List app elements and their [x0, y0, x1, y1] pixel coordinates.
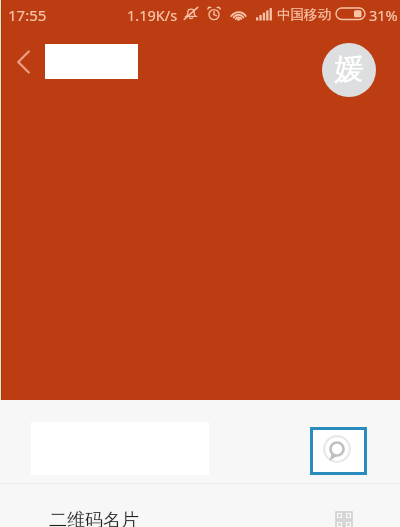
button[interactable]: Chat — [310, 427, 367, 475]
staticText: 中国移动 — [277, 6, 331, 23]
staticText: 31% — [369, 5, 398, 25]
button[interactable]: Profile — [322, 43, 376, 97]
button[interactable]: 二维码名片 — [0, 484, 400, 527]
staticText: 媛 — [334, 50, 364, 88]
staticText: 1.19K/s — [127, 5, 178, 25]
button[interactable]: Back — [6, 44, 42, 80]
staticText: 二维码名片 — [49, 509, 139, 527]
staticText: 17:55 — [8, 5, 47, 25]
